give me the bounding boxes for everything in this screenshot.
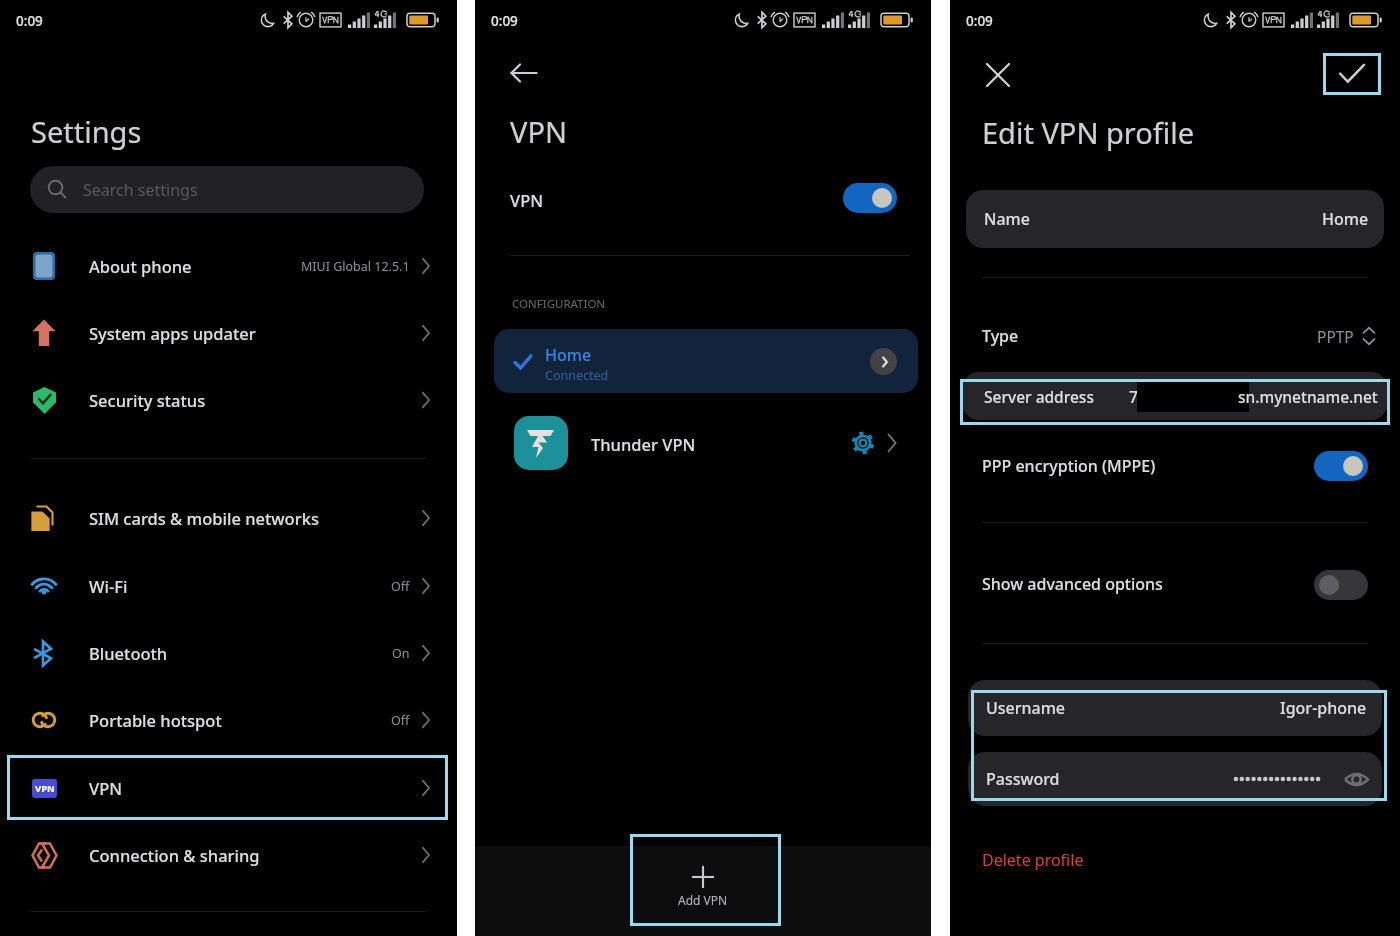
button[interactable]: Search settings [30,166,424,213]
button[interactable]: Bluetooth [0,620,457,686]
button[interactable]: Server address [960,379,1390,425]
staticText: Off [391,578,410,595]
button[interactable]: Username [968,680,1382,736]
button[interactable] [950,443,1400,489]
button[interactable]: Save [1323,53,1381,95]
staticText: SIM cards & mobile networks [89,507,319,529]
button[interactable]: SIM cards & mobile networks [0,485,457,551]
button[interactable]: Name [966,190,1384,248]
staticText: MIUI Global 12.5.1 [301,258,410,275]
staticText: Wi-Fi [89,575,128,597]
button[interactable]: Password [968,752,1382,806]
staticText: Password [986,768,1060,790]
button[interactable]: VPN switch [843,183,897,213]
staticText: PPTP [1317,326,1354,347]
button[interactable]: Add VPN [628,850,778,930]
button[interactable]: Security status [0,367,457,433]
button[interactable]: Close [976,53,1020,97]
button[interactable]: Show advanced options switch [1314,570,1368,600]
staticText: Search settings [83,179,198,201]
button[interactable] [950,313,1400,359]
button[interactable]: About phone [0,233,457,299]
staticText: Add VPN [678,892,728,908]
staticText: Connected [545,367,609,384]
staticText: Server address [984,386,1094,407]
staticText: Edit VPN profile [982,113,1195,152]
button[interactable]: Back [502,51,546,95]
button[interactable]: VPN [0,755,457,821]
staticText: Thunder VPN [591,433,696,455]
staticText: System apps updater [89,322,256,344]
staticText: Portable hotspot [89,709,222,731]
button[interactable]: System apps updater [0,300,457,366]
staticText: Settings [31,112,142,151]
button[interactable]: Wi-Fi [0,553,457,619]
staticText: VPN [510,112,567,151]
staticText: Security status [89,389,206,411]
button[interactable]: Server address [962,372,1388,420]
staticText: VPN [510,189,544,211]
staticText: Name [984,208,1030,230]
staticText: CONFIGURATION [512,296,606,312]
staticText: PPP encryption (MPPE) [982,455,1156,477]
button[interactable]: Portable hotspot [0,687,457,753]
staticText: VPN [35,782,55,795]
button[interactable]: Save [1323,53,1381,95]
staticText: Igor-phone [1280,697,1367,719]
staticText: Show advanced options [982,573,1163,595]
staticText: Home [545,344,592,366]
staticText: Off [391,712,410,729]
staticText: Type [982,325,1019,347]
button[interactable]: PPP encryption switch [1314,451,1368,481]
button[interactable] [475,173,931,225]
staticText: About phone [89,255,192,277]
button[interactable] [950,561,1400,607]
staticText: VPN [89,777,123,799]
staticText: Bluetooth [89,642,168,664]
button[interactable] [475,412,931,476]
staticText: 0:09 [16,12,43,30]
staticText: On [392,645,410,662]
button[interactable]: Thunder VPN settings [841,421,885,465]
staticText: sn.mynetname.net [1238,386,1378,407]
button[interactable]: Delete profile [982,849,1084,871]
staticText: 0:09 [491,12,518,30]
button[interactable]: VPN [7,755,448,820]
staticText: Connection & sharing [89,844,260,866]
button[interactable]: Connection & sharing [0,822,457,888]
button[interactable]: Credentials [971,690,1387,801]
staticText: 7 [1129,386,1138,407]
staticText: Home [1322,208,1369,230]
button[interactable]: Add VPN [630,834,781,926]
staticText: Username [986,697,1066,719]
staticText: 0:09 [966,12,993,30]
button[interactable]: Home [494,329,918,393]
